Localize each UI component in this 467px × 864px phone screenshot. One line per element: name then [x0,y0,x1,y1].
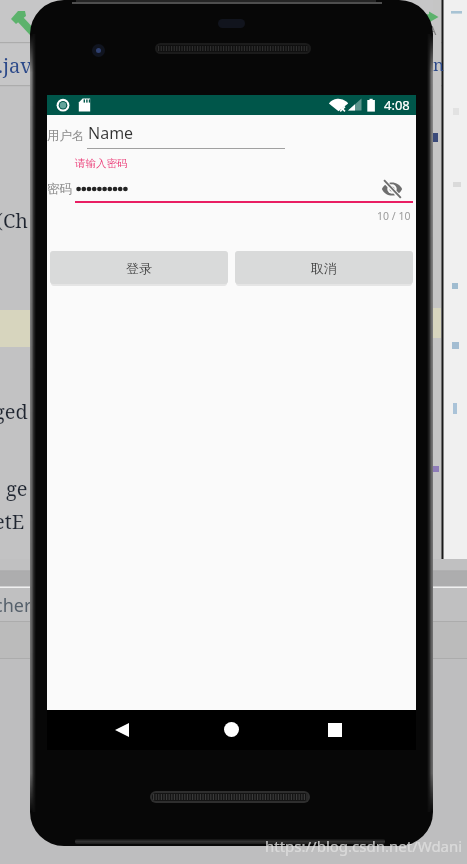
staticText: A [428,21,437,39]
button[interactable]: 取消 [235,251,413,284]
staticText: n [433,53,444,76]
staticText: cher [0,593,32,618]
button[interactable]: Home [216,714,246,744]
staticText: 取消 [311,260,337,276]
button[interactable]: 登录 [50,251,228,284]
staticText: 请输入密码 [75,157,128,170]
staticText: (Ch [0,207,28,234]
staticText: 10 / 10 [377,209,411,223]
button[interactable]: Toggle password visibility [381,178,403,200]
staticText: ge [6,475,28,502]
button[interactable]: Recents [320,715,350,745]
staticText: Name [88,122,134,144]
staticText: 用户名 [47,128,85,144]
staticText: .jav [0,52,32,79]
staticText: 登录 [126,260,152,276]
staticText: ged [0,398,28,425]
staticText: etE [0,508,25,535]
staticText: https://blog.csdn.net/Wdani [265,836,463,856]
staticText: 4:08 [384,96,410,114]
button[interactable]: Back [107,715,137,745]
staticText: 密码 [47,181,72,197]
